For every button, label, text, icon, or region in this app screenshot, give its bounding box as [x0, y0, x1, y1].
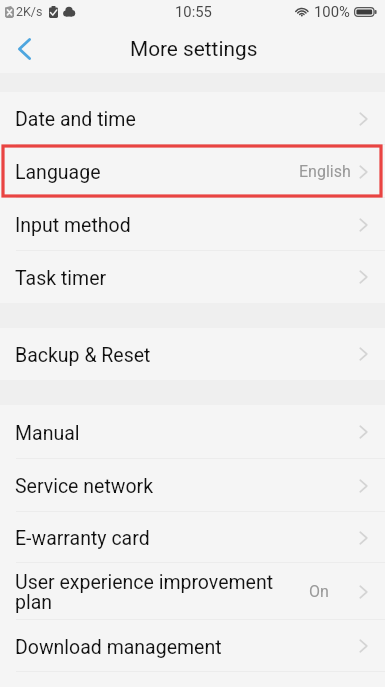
button[interactable]: Back [0, 26, 47, 73]
staticText: Task timer [15, 267, 351, 290]
staticText: User experience improvement plan [15, 571, 277, 614]
staticText: English [299, 162, 351, 181]
staticText: Download management [15, 636, 351, 659]
staticText: Backup & Reset [15, 344, 351, 367]
button[interactable]: Date and time [0, 92, 385, 145]
button[interactable]: Backup & Reset [0, 328, 385, 380]
staticText: On [309, 582, 329, 601]
button[interactable]: Manual [0, 405, 385, 459]
button[interactable]: Service network [0, 459, 385, 512]
button[interactable]: Task timer [0, 251, 385, 303]
staticText: Date and time [15, 108, 351, 131]
staticText: 10:55 [175, 3, 212, 20]
staticText: Manual [15, 422, 351, 445]
button[interactable]: E-warranty card [0, 512, 385, 563]
staticText: More settings [130, 37, 258, 61]
button[interactable]: Language [0, 145, 385, 198]
button[interactable]: User experience improvement plan [0, 563, 385, 620]
staticText: Language [15, 161, 291, 184]
staticText: Input method [15, 214, 351, 237]
staticText: Service network [15, 475, 351, 498]
button[interactable]: Input method [0, 198, 385, 251]
staticText: 2K/s [16, 4, 43, 19]
button[interactable]: Download management [0, 620, 385, 672]
staticText: 100% [314, 3, 350, 20]
staticText: E-warranty card [15, 527, 351, 550]
